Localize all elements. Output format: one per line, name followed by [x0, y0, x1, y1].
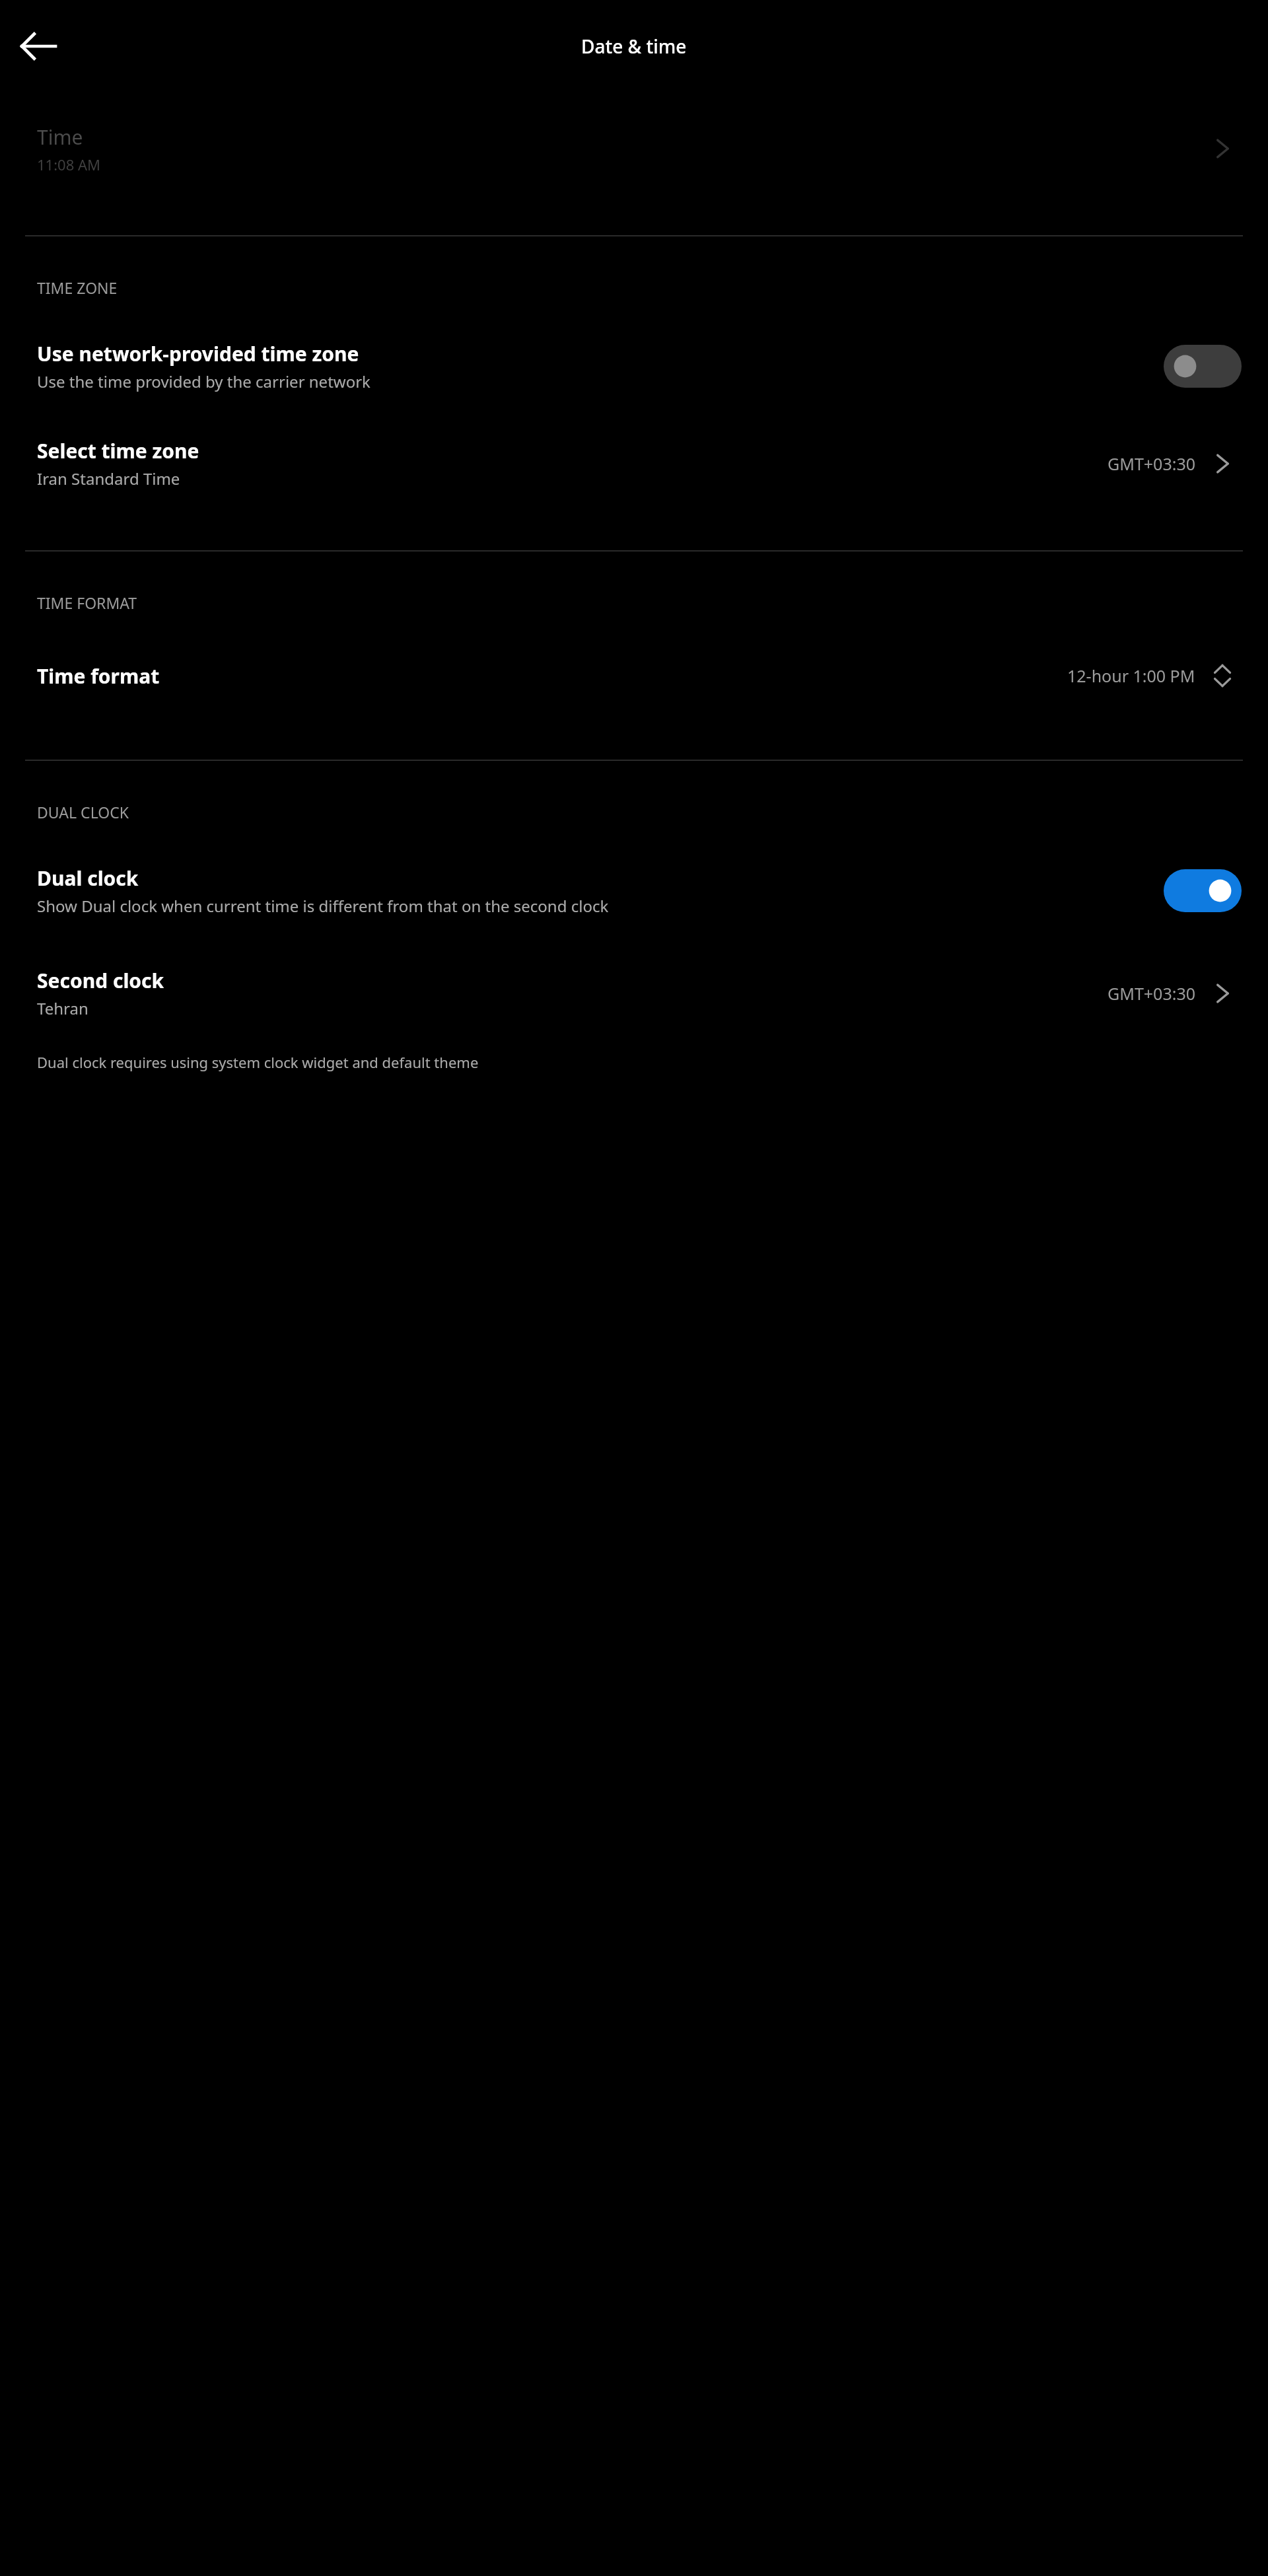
staticText: Select time zone	[37, 437, 199, 464]
staticText: Tehran	[37, 997, 88, 1019]
staticText: Use the time provided by the carrier net…	[37, 371, 370, 392]
button[interactable]: Toggle on	[1164, 869, 1242, 912]
button[interactable]: Time format	[0, 643, 1268, 708]
button[interactable]: Back	[15, 22, 62, 70]
staticText: Show Dual clock when current time is dif…	[37, 895, 609, 917]
button[interactable]: Time	[0, 92, 1268, 205]
staticText: GMT+03:30	[1108, 452, 1195, 475]
button[interactable]: Second clock	[0, 958, 1268, 1028]
staticText: GMT+03:30	[1108, 982, 1195, 1005]
staticText: TIME ZONE	[37, 277, 118, 298]
button[interactable]: Select time zone	[0, 428, 1268, 499]
staticText: Dual clock	[37, 865, 139, 892]
staticText: Dual clock requires using system clock w…	[37, 1052, 479, 1072]
staticText: Time	[37, 124, 83, 151]
button[interactable]: Dual clock	[0, 853, 1268, 929]
staticText: Time format	[37, 662, 1067, 690]
staticText: 11:08 AM	[37, 155, 100, 174]
staticText: Iran Standard Time	[37, 468, 180, 489]
staticText: Use network-provided time zone	[37, 340, 359, 367]
staticText: DUAL CLOCK	[37, 802, 129, 822]
button[interactable]: Use network-provided time zone	[0, 328, 1268, 404]
staticText: Second clock	[37, 967, 164, 994]
button[interactable]: Toggle off	[1164, 345, 1242, 388]
staticText: 12-hour 1:00 PM	[1067, 664, 1195, 687]
staticText: Date & time	[581, 34, 687, 59]
staticText: TIME FORMAT	[37, 592, 137, 613]
